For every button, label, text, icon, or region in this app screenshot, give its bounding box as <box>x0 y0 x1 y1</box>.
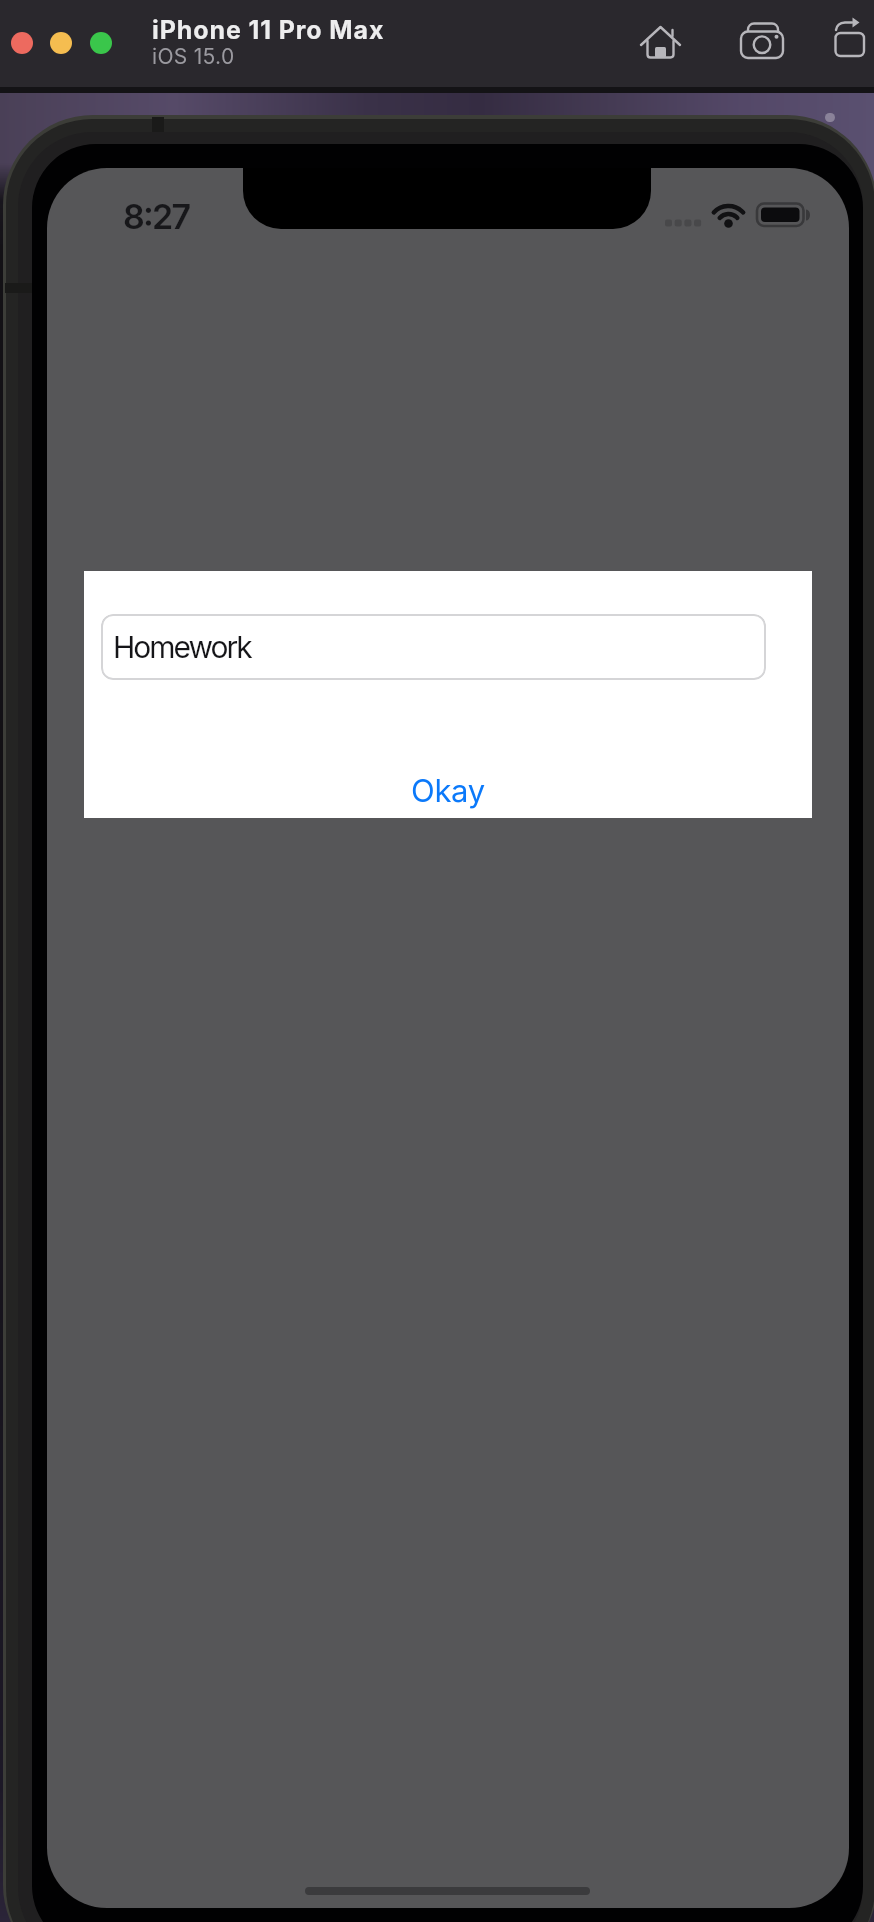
staticText: iPhone 11 Pro Max <box>152 15 385 45</box>
button[interactable]: Homework <box>101 614 766 680</box>
button[interactable] <box>90 32 112 54</box>
staticText: Okay <box>411 772 485 810</box>
staticText: 8:27 <box>123 196 190 237</box>
button[interactable] <box>830 16 870 56</box>
button[interactable] <box>739 18 785 64</box>
button[interactable] <box>11 32 33 54</box>
staticText: Homework <box>113 629 251 665</box>
button[interactable]: Okay <box>383 763 513 819</box>
staticText: iOS 15.0 <box>152 44 235 69</box>
button[interactable] <box>638 20 682 64</box>
button[interactable] <box>50 32 72 54</box>
